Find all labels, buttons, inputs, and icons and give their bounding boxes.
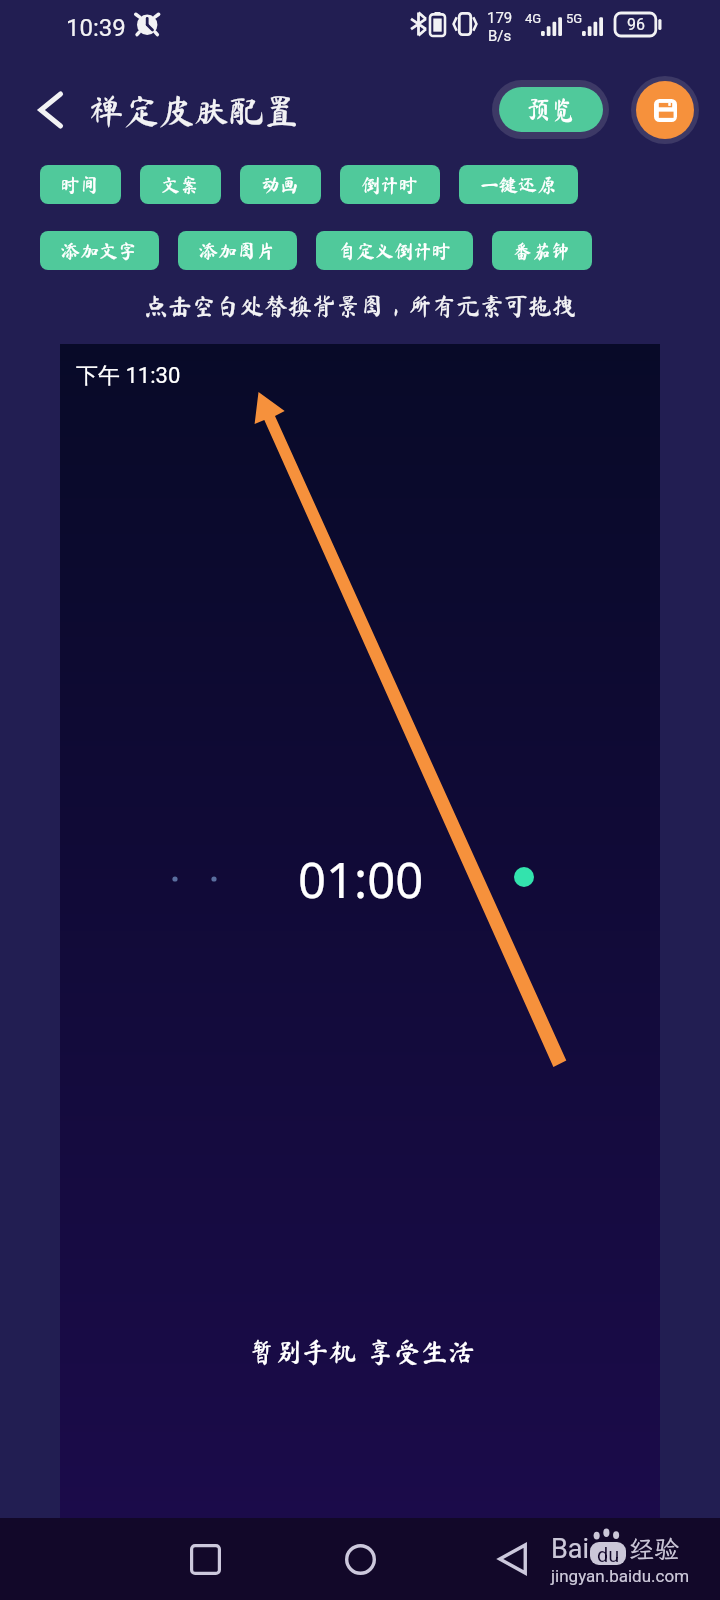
- staticText: 5G: [566, 11, 583, 26]
- button[interactable]: 预览: [492, 80, 609, 139]
- button[interactable]: 文案: [140, 165, 221, 204]
- staticText: 一键还原: [480, 175, 557, 194]
- button[interactable]: Save: [631, 76, 699, 144]
- staticText: 添加图片: [199, 241, 276, 260]
- staticText: 10:39: [66, 14, 126, 42]
- staticText: jingyan.baidu.com: [551, 1566, 690, 1586]
- staticText: 暂别手机 享受生活: [248, 1338, 475, 1365]
- staticText: B/s: [488, 27, 512, 45]
- staticText: 点击空白处替换背景图，所有元素可拖拽: [144, 294, 576, 318]
- staticText: 时间: [61, 175, 100, 194]
- button[interactable]: 时间: [40, 165, 121, 204]
- button[interactable]: 倒计时: [340, 165, 440, 204]
- button[interactable]: 添加文字: [40, 231, 159, 270]
- button[interactable]: Home: [330, 1529, 390, 1589]
- staticText: 文案: [161, 175, 200, 194]
- button[interactable]: Recents: [175, 1529, 235, 1589]
- button[interactable]: 添加图片: [178, 231, 297, 270]
- staticText: 动画: [261, 175, 300, 194]
- button[interactable]: Back: [21, 81, 79, 139]
- button[interactable]: 动画: [240, 165, 321, 204]
- staticText: 4G: [525, 11, 542, 26]
- staticText: 经验: [629, 1532, 680, 1565]
- staticText: 01:00: [298, 846, 424, 913]
- staticText: du: [597, 1543, 620, 1566]
- staticText: Bai: [551, 1533, 590, 1565]
- button[interactable]: Back: [482, 1529, 542, 1589]
- staticText: 预览: [526, 97, 577, 122]
- button[interactable]: 自定义倒计时: [316, 231, 473, 270]
- staticText: 番茄钟: [513, 241, 571, 260]
- staticText: 下午 11:30: [76, 362, 181, 390]
- staticText: 179: [487, 9, 513, 27]
- staticText: 自定义倒计时: [337, 241, 452, 260]
- button[interactable]: 下午 11:30: [60, 344, 660, 1518]
- button[interactable]: 一键还原: [459, 165, 578, 204]
- button[interactable]: 番茄钟: [492, 231, 592, 270]
- staticText: 禅定皮肤配置: [89, 93, 300, 128]
- staticText: 倒计时: [361, 175, 419, 194]
- staticText: 添加文字: [61, 241, 138, 260]
- staticText: 96: [627, 15, 645, 34]
